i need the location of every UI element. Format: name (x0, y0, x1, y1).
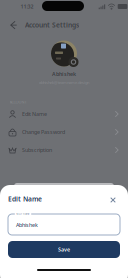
staticText: Abhishek (16, 221, 38, 229)
button[interactable]: Back (4, 17, 22, 33)
staticText: Change Password (22, 128, 65, 136)
staticText: Subscription (22, 146, 52, 154)
staticText: 11:32 (20, 3, 33, 10)
button[interactable]: Subscription (0, 141, 128, 159)
staticText: Save (58, 246, 70, 253)
button[interactable]: Change Password (0, 123, 128, 141)
staticText: Account Settings (25, 21, 79, 29)
staticText: abhishek@teamname.design (39, 80, 89, 85)
staticText: Edit Name (22, 110, 47, 118)
staticText: ACCOUNT (9, 99, 26, 105)
button[interactable]: Edit Name (0, 105, 128, 123)
button[interactable]: Save (8, 241, 120, 258)
staticText: Abhishek (52, 70, 76, 78)
staticText: Edit Name (8, 195, 42, 203)
button[interactable]: Close (106, 193, 120, 207)
staticText: Your name (16, 212, 30, 216)
